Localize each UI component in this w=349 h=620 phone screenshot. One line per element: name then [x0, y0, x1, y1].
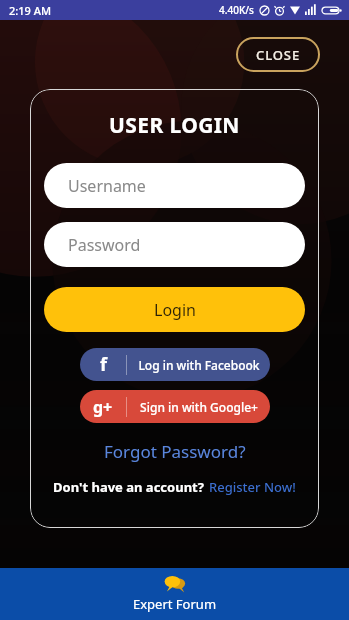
staticText: Password [68, 234, 141, 256]
button[interactable]: Expert Forum [0, 568, 349, 620]
staticText: 2:19 AM [9, 3, 52, 18]
button[interactable]: Login [44, 287, 305, 332]
staticText: Username [68, 175, 146, 197]
staticText: g+ [93, 396, 113, 418]
staticText: Log in with Facebook [138, 357, 260, 373]
staticText: Register Now! [209, 478, 296, 496]
button[interactable]: g+ [80, 390, 270, 423]
staticText: USER LOGIN [109, 111, 240, 140]
button[interactable]: f [80, 348, 270, 381]
button[interactable]: Register Now! [209, 478, 296, 496]
staticText: 4.40K/s [219, 3, 254, 17]
staticText: Forgot Password? [104, 440, 246, 463]
staticText: Login [154, 299, 196, 321]
staticText: Expert Forum [133, 595, 217, 613]
button[interactable]: Username [44, 163, 305, 208]
staticText: f [100, 352, 107, 377]
button[interactable]: Password [44, 222, 305, 267]
staticText: Sign in with Google+ [140, 399, 258, 415]
staticText: Don't have an account? [53, 478, 204, 496]
button[interactable]: Forgot Password? [96, 438, 254, 465]
staticText: CLOSE [256, 46, 301, 64]
button[interactable]: CLOSE [236, 37, 320, 72]
